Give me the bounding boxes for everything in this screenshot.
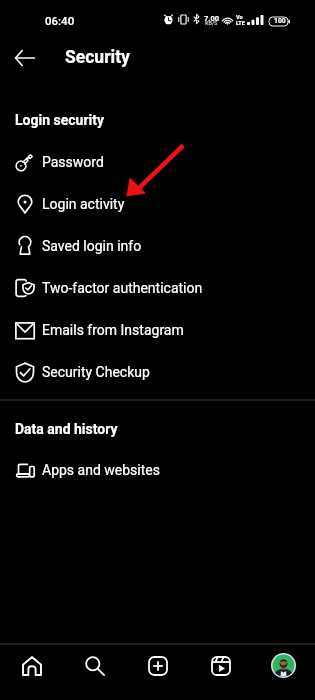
button[interactable]: Password	[0, 141, 315, 183]
button[interactable]: Login activity	[0, 183, 315, 225]
staticText: Security	[65, 47, 130, 68]
button[interactable]: Reels	[189, 637, 252, 694]
staticText: Vo	[236, 14, 243, 20]
staticText: 7.00	[204, 14, 220, 23]
button[interactable]: Security Checkup	[0, 351, 315, 393]
button[interactable]: Profile	[252, 637, 315, 694]
staticText: Login activity	[42, 196, 125, 212]
staticText: KB/S	[205, 20, 218, 26]
staticText: Login security	[15, 112, 105, 128]
staticText: 06:40	[45, 14, 75, 27]
button[interactable]: Create	[126, 637, 189, 694]
staticText: LTE	[236, 20, 245, 26]
staticText: Emails from Instagram	[42, 322, 184, 338]
button[interactable]: Back	[7, 40, 43, 76]
staticText: Saved login info	[42, 238, 142, 254]
staticText: Security Checkup	[42, 364, 150, 380]
button[interactable]: Emails from Instagram	[0, 309, 315, 351]
button[interactable]: Saved login info	[0, 225, 315, 267]
button[interactable]: Two-factor authentication	[0, 267, 315, 309]
staticText: Apps and websites	[42, 462, 160, 478]
staticText: Password	[42, 154, 104, 170]
button[interactable]: Search	[63, 637, 126, 694]
staticText: Two-factor authentication	[42, 280, 203, 296]
staticText: Data and history	[15, 421, 118, 437]
button[interactable]: Apps and websites	[0, 449, 315, 491]
button[interactable]: Home	[0, 637, 63, 694]
staticText: 100	[274, 17, 286, 25]
